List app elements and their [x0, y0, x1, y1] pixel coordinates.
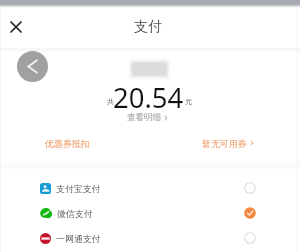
button[interactable]: 微信支付 [0, 203, 300, 223]
button[interactable]: Close [4, 15, 28, 39]
button[interactable]: Back [17, 51, 48, 82]
staticText: 优惠券抵扣 [45, 138, 90, 149]
staticText: 元 [185, 97, 192, 106]
staticText: 20.54 [113, 79, 184, 116]
staticText: 暂无可用券 [202, 138, 247, 149]
button[interactable]: 支付宝支付 [0, 178, 300, 198]
staticText: 共 [107, 97, 114, 106]
staticText: 查看明细 [127, 112, 161, 123]
button[interactable]: 查看明细 [127, 112, 169, 123]
staticText: 支付 [134, 18, 162, 36]
button[interactable]: 优惠券抵扣 [0, 133, 300, 153]
button[interactable]: 一网通支付 [0, 228, 300, 248]
staticText: 一网通支付 [56, 233, 101, 244]
staticText: 微信支付 [57, 208, 93, 219]
staticText: 支付宝支付 [56, 183, 101, 194]
